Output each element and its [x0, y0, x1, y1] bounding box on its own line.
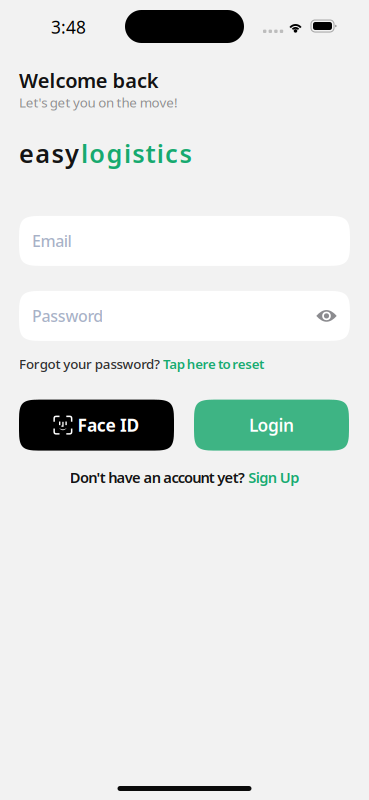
staticText: Welcome back	[19, 67, 159, 94]
staticText: 3:48	[51, 15, 86, 38]
staticText: easy	[19, 136, 79, 170]
button[interactable]: Face ID	[19, 400, 174, 451]
staticText: logistics	[81, 136, 191, 170]
staticText: Forgot your password?	[19, 355, 163, 373]
staticText: Tap here to reset	[163, 355, 264, 373]
staticText: Sign Up	[248, 468, 299, 487]
button[interactable]: Login	[194, 400, 349, 451]
button[interactable]: Email	[19, 216, 350, 266]
button[interactable]: Sign Up	[248, 468, 299, 487]
staticText: Login	[249, 414, 294, 437]
staticText: Don't have an account yet?	[70, 468, 248, 487]
button[interactable]: Show password	[316, 307, 337, 324]
staticText: Email	[32, 230, 71, 251]
staticText: Face ID	[77, 414, 140, 437]
staticText: Password	[32, 305, 103, 326]
staticText: Let's get you on the move!	[19, 94, 178, 111]
button[interactable]: Tap here to reset	[163, 355, 264, 373]
